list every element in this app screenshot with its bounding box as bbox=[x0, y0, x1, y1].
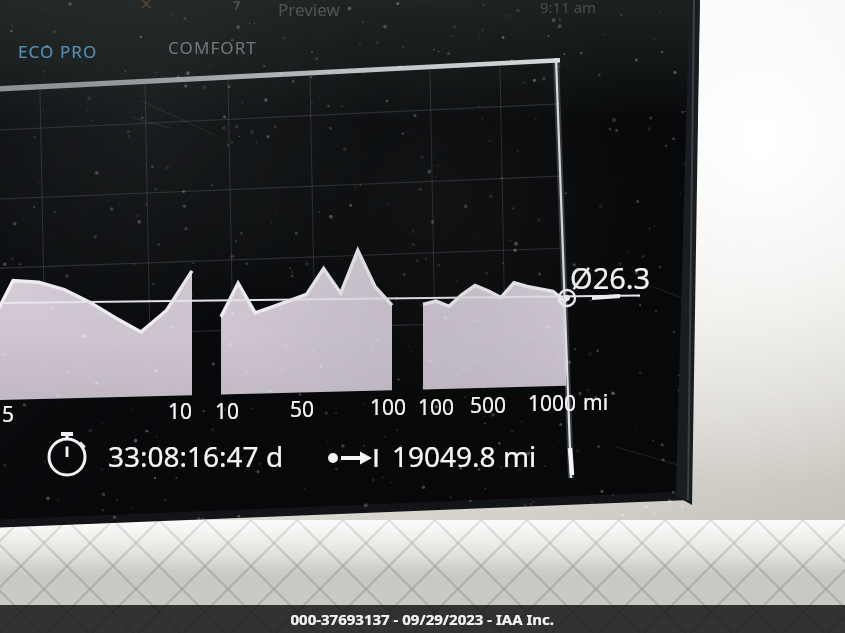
button[interactable]: Vehicle consumption history screen photo bbox=[0, 0, 845, 633]
